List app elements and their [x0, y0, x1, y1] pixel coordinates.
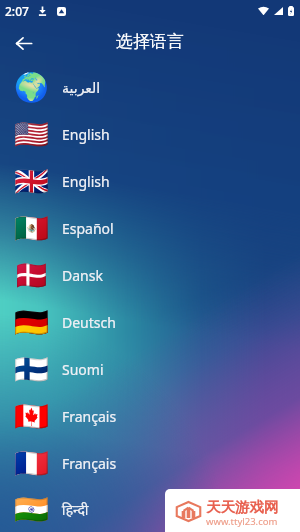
button[interactable]: 🇫🇮: [0, 346, 300, 393]
staticText: Français: [62, 407, 117, 426]
staticText: Suomi: [62, 360, 104, 379]
button[interactable]: 🇩🇰: [0, 252, 300, 299]
staticText: 🇩🇰: [14, 259, 48, 292]
staticText: 选择语言: [116, 31, 184, 52]
staticText: English: [62, 125, 110, 144]
button[interactable]: 🇨🇦: [0, 393, 300, 440]
button[interactable]: 🌍: [0, 64, 300, 111]
staticText: 🇫🇷: [14, 447, 48, 480]
staticText: 🇬🇧: [14, 165, 48, 198]
staticText: 🇲🇽: [14, 212, 48, 245]
staticText: 2:07: [5, 3, 29, 19]
staticText: 🌍: [14, 71, 48, 104]
button[interactable]: 🇮🇳: [0, 487, 300, 532]
button[interactable]: Back: [8, 27, 40, 59]
staticText: Français: [62, 454, 117, 473]
staticText: www.ttyl23.com: [206, 515, 278, 528]
button[interactable]: 🇩🇪: [0, 299, 300, 346]
staticText: Español: [62, 219, 114, 238]
staticText: Dansk: [62, 266, 103, 285]
staticText: English: [62, 172, 110, 191]
staticText: 🇮🇳: [14, 493, 48, 526]
staticText: 🇫🇮: [14, 353, 48, 386]
button[interactable]: 🇫🇷: [0, 440, 300, 487]
staticText: Deutsch: [62, 313, 116, 332]
button[interactable]: 🇬🇧: [0, 158, 300, 205]
button[interactable]: 🇲🇽: [0, 205, 300, 252]
staticText: 🇨🇦: [14, 400, 48, 433]
staticText: 🇩🇪: [14, 306, 48, 339]
staticText: العربية: [62, 80, 101, 96]
staticText: हिन्दी: [62, 500, 89, 519]
staticText: 🇺🇸: [14, 118, 48, 151]
button[interactable]: 🇺🇸: [0, 111, 300, 158]
staticText: 天天游戏网: [206, 498, 279, 516]
